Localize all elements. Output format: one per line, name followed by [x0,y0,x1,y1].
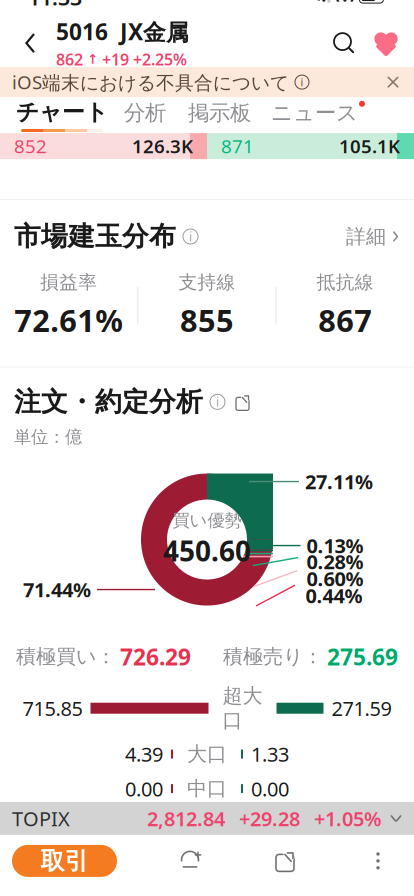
button[interactable]: お気に入り [366,20,406,66]
button[interactable]: 戻る [8,20,52,66]
staticText: 超大口 [222,684,262,733]
staticText: 271.59 [331,695,391,721]
staticText: 注文・約定分析 [14,385,203,418]
staticText: 855 [180,300,234,340]
staticText: iOS端末における不具合について [12,70,289,95]
staticText: 275.69 [327,642,398,672]
staticText: 11:33 [28,0,82,11]
staticText: 損益率 [40,271,97,294]
staticText: TOPIX [12,805,70,832]
staticText: +1.05% [314,805,382,832]
staticText: 大口 [187,742,227,766]
staticText: 27.11% [305,468,373,495]
staticText: 0.00 [251,775,289,802]
button[interactable]: 共有 [263,839,307,883]
button[interactable]: TOPIX [0,802,414,835]
staticText: ↑ [87,52,98,67]
staticText: 取引 [40,846,88,876]
button[interactable]: アラート [168,839,212,883]
button[interactable]: iOS端末における不具合について [0,67,414,97]
staticText: 中口 [187,776,227,801]
staticText: 0.28% [306,548,363,575]
button[interactable]: チャート [12,98,112,132]
staticText: チャート [16,98,108,126]
staticText: 126.3K [132,134,193,158]
staticText: 分析 [124,100,166,126]
staticText: 72.61% [14,300,123,340]
staticText: 871 [221,134,254,158]
staticText: 71.44% [23,576,91,603]
staticText: 0.13% [306,532,363,559]
staticText: 2,812.84 [147,805,225,832]
staticText: 852 [14,134,47,158]
staticText: 市場建玉分布 [14,220,176,253]
staticText: 5016 JX金属 [56,16,189,47]
button[interactable]: 掲示板 [178,100,261,132]
staticText: i [189,228,192,244]
staticText: 買い優勢 [172,510,241,531]
staticText: 掲示板 [188,100,251,126]
staticText: 4.39 [125,741,163,767]
staticText: ニュース [271,100,358,126]
staticText: 867 [318,300,372,340]
staticText: 単位：億 [14,426,82,448]
staticText: +19 [102,49,129,70]
staticText: +29.28 [239,805,300,832]
staticText: i [216,394,219,410]
staticText: 715.85 [22,695,82,721]
staticText: 抵抗線 [317,271,374,294]
staticText: 詳細 [346,224,386,249]
staticText: 726.29 [120,642,191,672]
button[interactable]: その他 [358,839,398,883]
staticText: +2.25% [133,49,187,70]
staticText: 450.60 [163,532,251,569]
button[interactable]: 取引 [12,845,117,877]
staticText: 0.00 [125,775,163,802]
staticText: 支持線 [178,271,235,294]
staticText: 1.33 [251,741,289,767]
staticText: i [300,75,303,89]
staticText: 積極売り： [223,644,323,669]
staticText: 0.60% [306,565,363,592]
button[interactable]: 検索 [322,20,366,66]
button[interactable]: 共有 [225,392,252,411]
staticText: 0.44% [305,582,362,609]
button[interactable]: 詳細 [346,224,400,249]
button[interactable]: ニュース [261,100,375,132]
staticText: 積極買い： [16,644,116,669]
button[interactable]: 分析 [112,100,178,132]
staticText: 105.1K [339,134,400,158]
staticText: 862 [56,49,83,70]
